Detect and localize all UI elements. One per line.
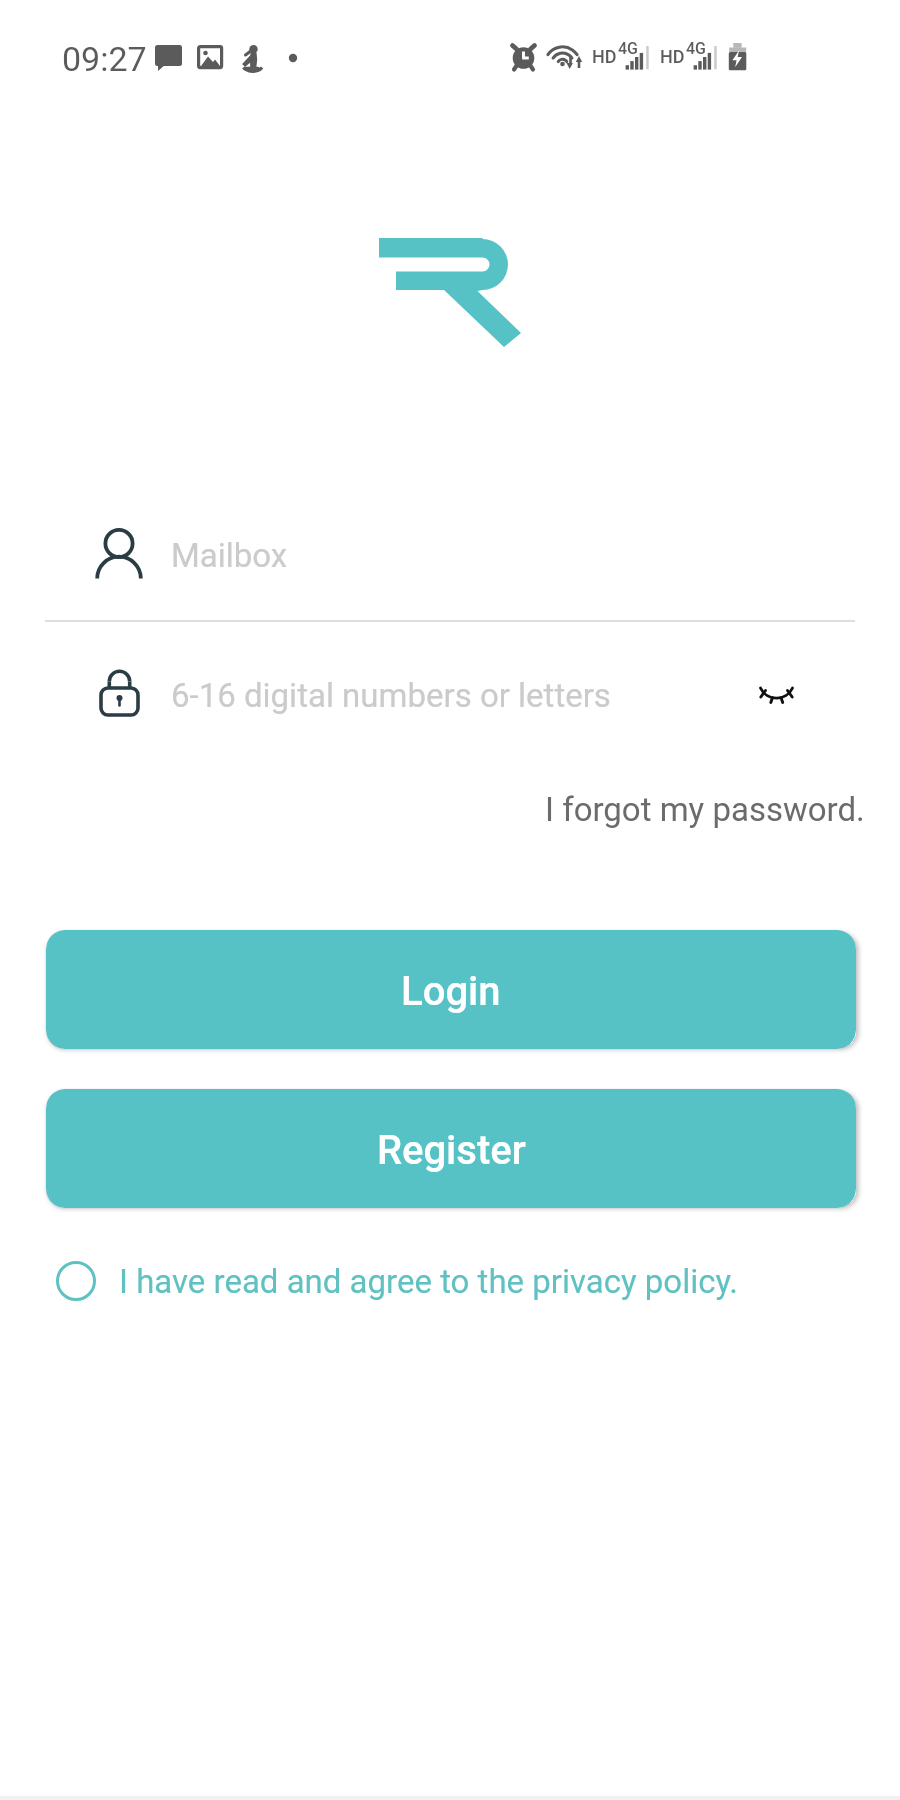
button[interactable]: I have read and agree to the privacy pol…: [45, 1250, 739, 1312]
button[interactable]: Mailbox: [45, 500, 855, 610]
staticText: 4G: [686, 39, 706, 58]
button[interactable]: I forgot my password.: [535, 784, 875, 835]
button[interactable]: 6-16 digital numbers or letters: [45, 640, 855, 750]
button[interactable]: Login: [46, 930, 856, 1049]
staticText: Register: [377, 1127, 526, 1174]
staticText: Login: [401, 968, 501, 1015]
staticText: HD: [660, 46, 685, 67]
staticText: 6-16 digital numbers or letters: [171, 676, 611, 715]
staticText: I forgot my password.: [545, 790, 865, 829]
staticText: Mailbox: [171, 536, 288, 575]
staticText: 4G: [618, 39, 638, 58]
staticText: HD: [592, 46, 617, 67]
button[interactable]: Show password: [745, 660, 815, 730]
staticText: I have read and agree to the privacy pol…: [119, 1262, 739, 1301]
button[interactable]: Register: [46, 1089, 856, 1208]
staticText: 09:27: [62, 39, 147, 79]
